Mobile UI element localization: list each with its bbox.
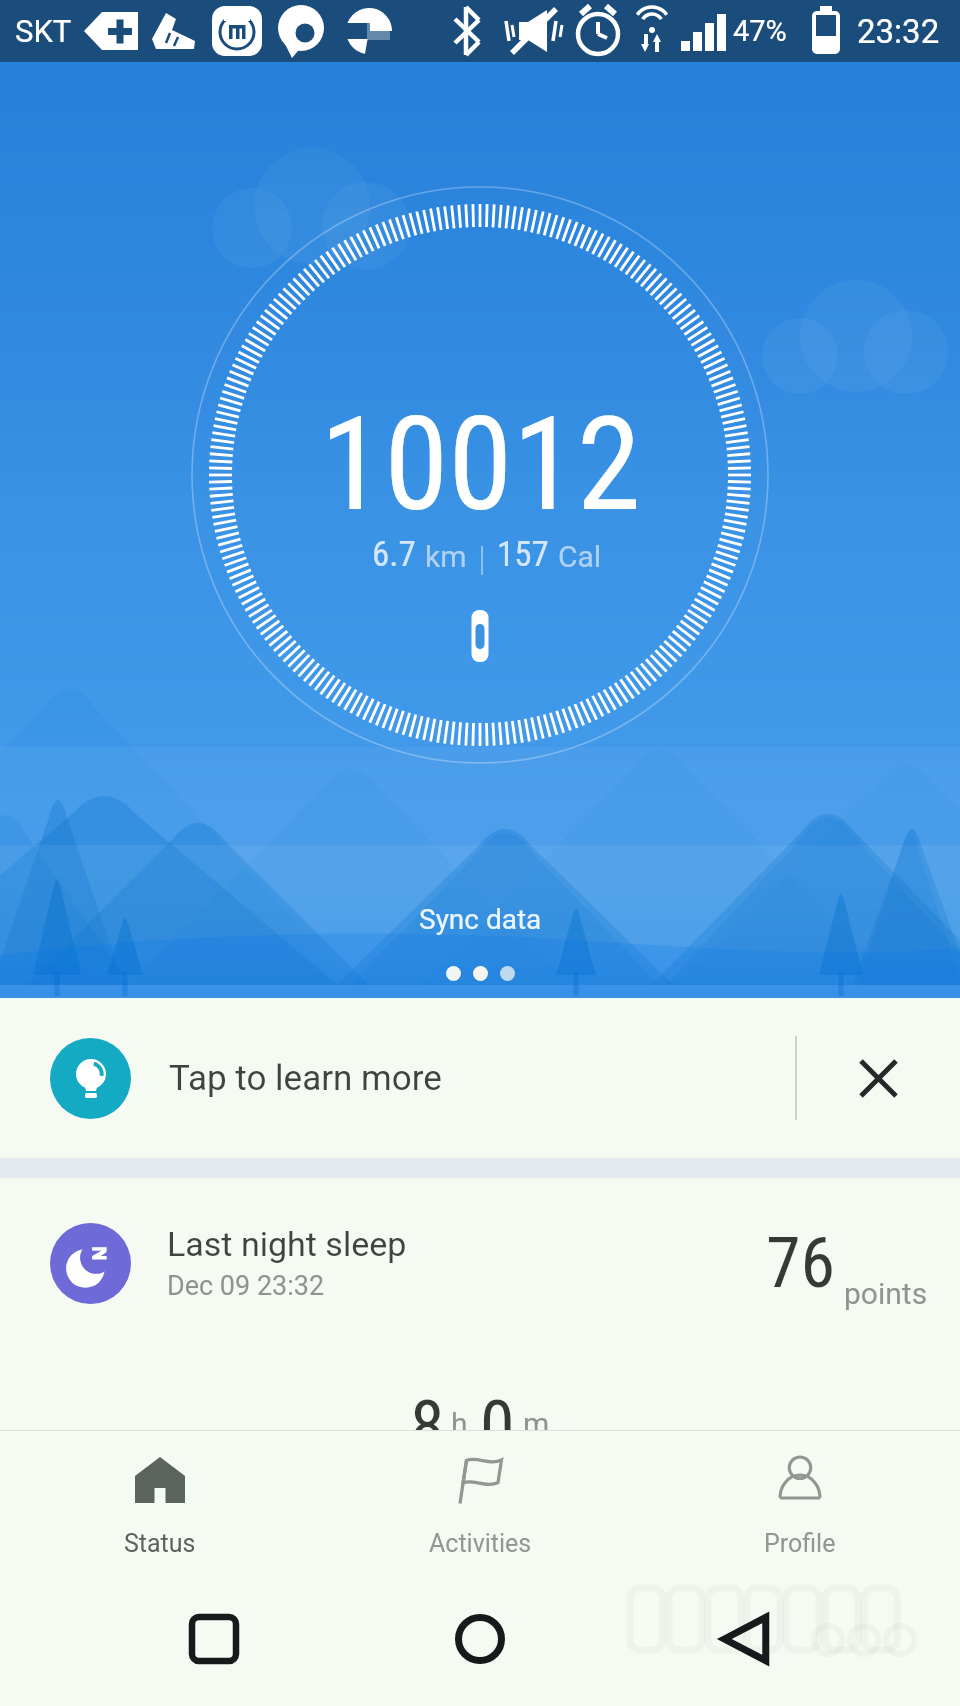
staticText: Profile <box>764 1529 836 1558</box>
button[interactable]: Dismiss <box>797 998 960 1158</box>
staticText: Sync data <box>419 903 542 936</box>
button[interactable]: Profile <box>640 1431 960 1572</box>
button[interactable]: Back <box>691 1584 801 1694</box>
staticText: m <box>523 1406 550 1430</box>
staticText: 10012 <box>320 388 641 540</box>
button[interactable]: Last night sleep <box>0 1178 960 1430</box>
staticText: h <box>451 1406 468 1430</box>
staticText: points <box>844 1276 928 1311</box>
staticText: 47% <box>733 14 787 48</box>
staticText: SKT <box>15 13 72 49</box>
staticText: 157 <box>497 534 549 575</box>
button[interactable]: Activities <box>320 1431 640 1572</box>
button[interactable]: Home <box>425 1584 535 1694</box>
staticText: 23:32 <box>857 12 940 51</box>
staticText: km <box>425 539 467 574</box>
staticText: 6.7 <box>372 534 416 575</box>
staticText: Dec 09 23:32 <box>167 1270 325 1302</box>
staticText: 76 <box>766 1222 836 1304</box>
button[interactable]: Tap to learn more <box>0 998 960 1158</box>
button[interactable]: Status <box>0 1431 320 1572</box>
button[interactable]: Recent apps <box>159 1584 269 1694</box>
staticText: Last night sleep <box>167 1224 407 1264</box>
staticText: Activities <box>429 1529 532 1558</box>
staticText: Tap to learn more <box>169 1058 442 1099</box>
staticText: 0 <box>480 1385 515 1430</box>
staticText: 8 <box>410 1385 445 1430</box>
staticText: Status <box>124 1529 196 1558</box>
staticText: Cal <box>558 539 602 574</box>
